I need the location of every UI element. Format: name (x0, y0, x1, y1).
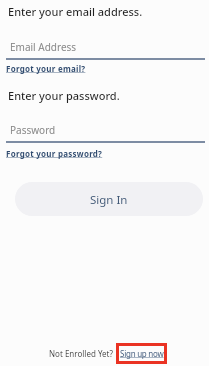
button[interactable]: Forgot your password? (6, 148, 103, 159)
staticText: Email Address (10, 40, 77, 54)
staticText: Password (10, 123, 56, 137)
staticText: Enter your email address. (8, 4, 143, 19)
staticText: Not Enrolled Yet? (49, 348, 113, 359)
button[interactable]: Sign In (15, 182, 203, 216)
staticText: Sign In (90, 192, 128, 208)
staticText: Sign up now (120, 348, 164, 359)
button[interactable]: Sign up now (116, 343, 167, 364)
staticText: Enter your password. (8, 88, 120, 103)
button[interactable]: Forgot your email? (6, 63, 86, 74)
